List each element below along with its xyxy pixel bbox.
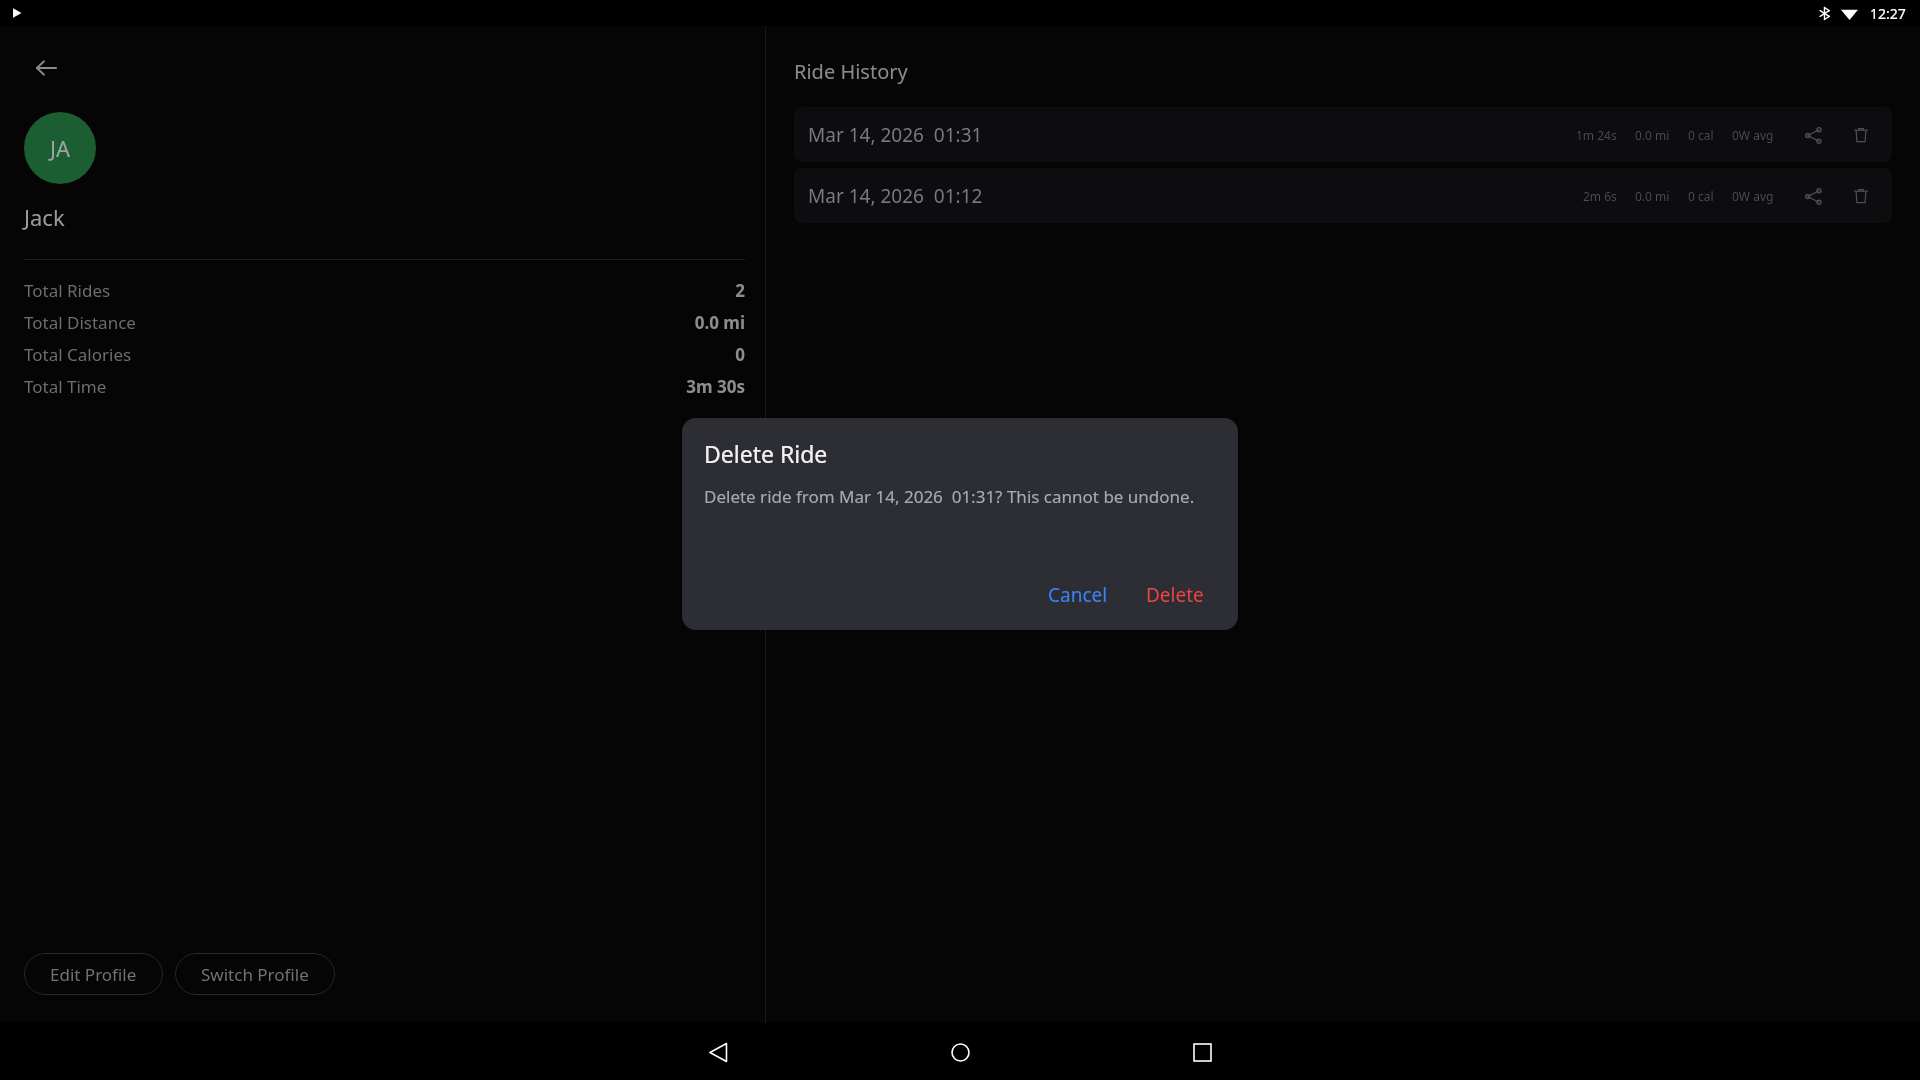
staticText: Total Calories: [24, 343, 132, 366]
staticText: 0W avg: [1732, 188, 1774, 204]
staticText: Cancel: [1048, 582, 1108, 608]
staticText: Ride History: [794, 58, 908, 85]
button[interactable]: Switch Profile: [175, 953, 335, 995]
button[interactable]: Delete: [1844, 179, 1878, 213]
staticText: 0.0 mi: [1635, 127, 1670, 143]
staticText: Total Time: [24, 375, 107, 398]
staticText: Edit Profile: [50, 963, 137, 986]
button[interactable]: Back: [24, 46, 68, 90]
staticText: 0: [735, 343, 745, 366]
button[interactable]: Delete: [1844, 118, 1878, 152]
staticText: JA: [50, 133, 71, 163]
staticText: 0W avg: [1732, 127, 1774, 143]
staticText: 0 cal: [1688, 188, 1714, 204]
staticText: 2m 6s: [1583, 188, 1617, 204]
button[interactable]: Edit Profile: [24, 953, 163, 995]
staticText: Mar 14, 2026 01:31: [808, 122, 983, 148]
button[interactable]: Mar 14, 2026 01:12: [794, 168, 1892, 223]
staticText: 1m 24s: [1576, 127, 1617, 143]
staticText: Delete ride from Mar 14, 2026 01:31? Thi…: [704, 485, 1195, 508]
staticText: Jack: [24, 202, 65, 232]
button[interactable]: Share: [1796, 118, 1830, 152]
staticText: 0 cal: [1688, 127, 1714, 143]
button[interactable]: Back: [694, 1028, 742, 1076]
staticText: Switch Profile: [201, 963, 309, 986]
staticText: Delete: [1146, 582, 1204, 608]
staticText: Total Distance: [24, 311, 136, 334]
staticText: 3m 30s: [686, 375, 745, 398]
button[interactable]: Delete: [1134, 574, 1216, 616]
staticText: Mar 14, 2026 01:12: [808, 183, 983, 209]
button[interactable]: Mar 14, 2026 01:31: [794, 107, 1892, 162]
staticText: Delete Ride: [704, 438, 828, 469]
staticText: 0.0 mi: [694, 311, 745, 334]
button[interactable]: Home: [936, 1028, 984, 1076]
staticText: 0.0 mi: [1635, 188, 1670, 204]
staticText: 2: [735, 279, 745, 302]
staticText: Total Rides: [24, 279, 111, 302]
button[interactable]: Share: [1796, 179, 1830, 213]
staticText: 12:27: [1870, 4, 1906, 23]
button[interactable]: Cancel: [1036, 574, 1120, 616]
button[interactable]: Recent apps: [1178, 1028, 1226, 1076]
